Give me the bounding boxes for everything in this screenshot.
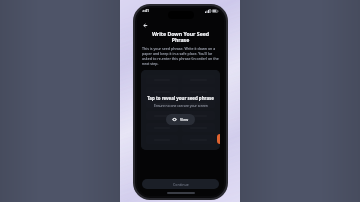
staticText: Continue: [173, 182, 189, 187]
button[interactable]: Continue: [142, 179, 219, 189]
staticText: View: [180, 117, 189, 122]
staticText: Ensure no one can see your screen: [154, 103, 208, 107]
button[interactable]: View: [166, 114, 195, 125]
staticText: 9:41: [142, 8, 149, 13]
staticText: This is your seed phrase. Write it down …: [142, 46, 219, 66]
staticText: Tap to reveal your seed phrase: [147, 95, 214, 101]
staticText: Write Down Your Seed Phrase: [143, 30, 218, 43]
button[interactable]: Back: [141, 21, 150, 30]
